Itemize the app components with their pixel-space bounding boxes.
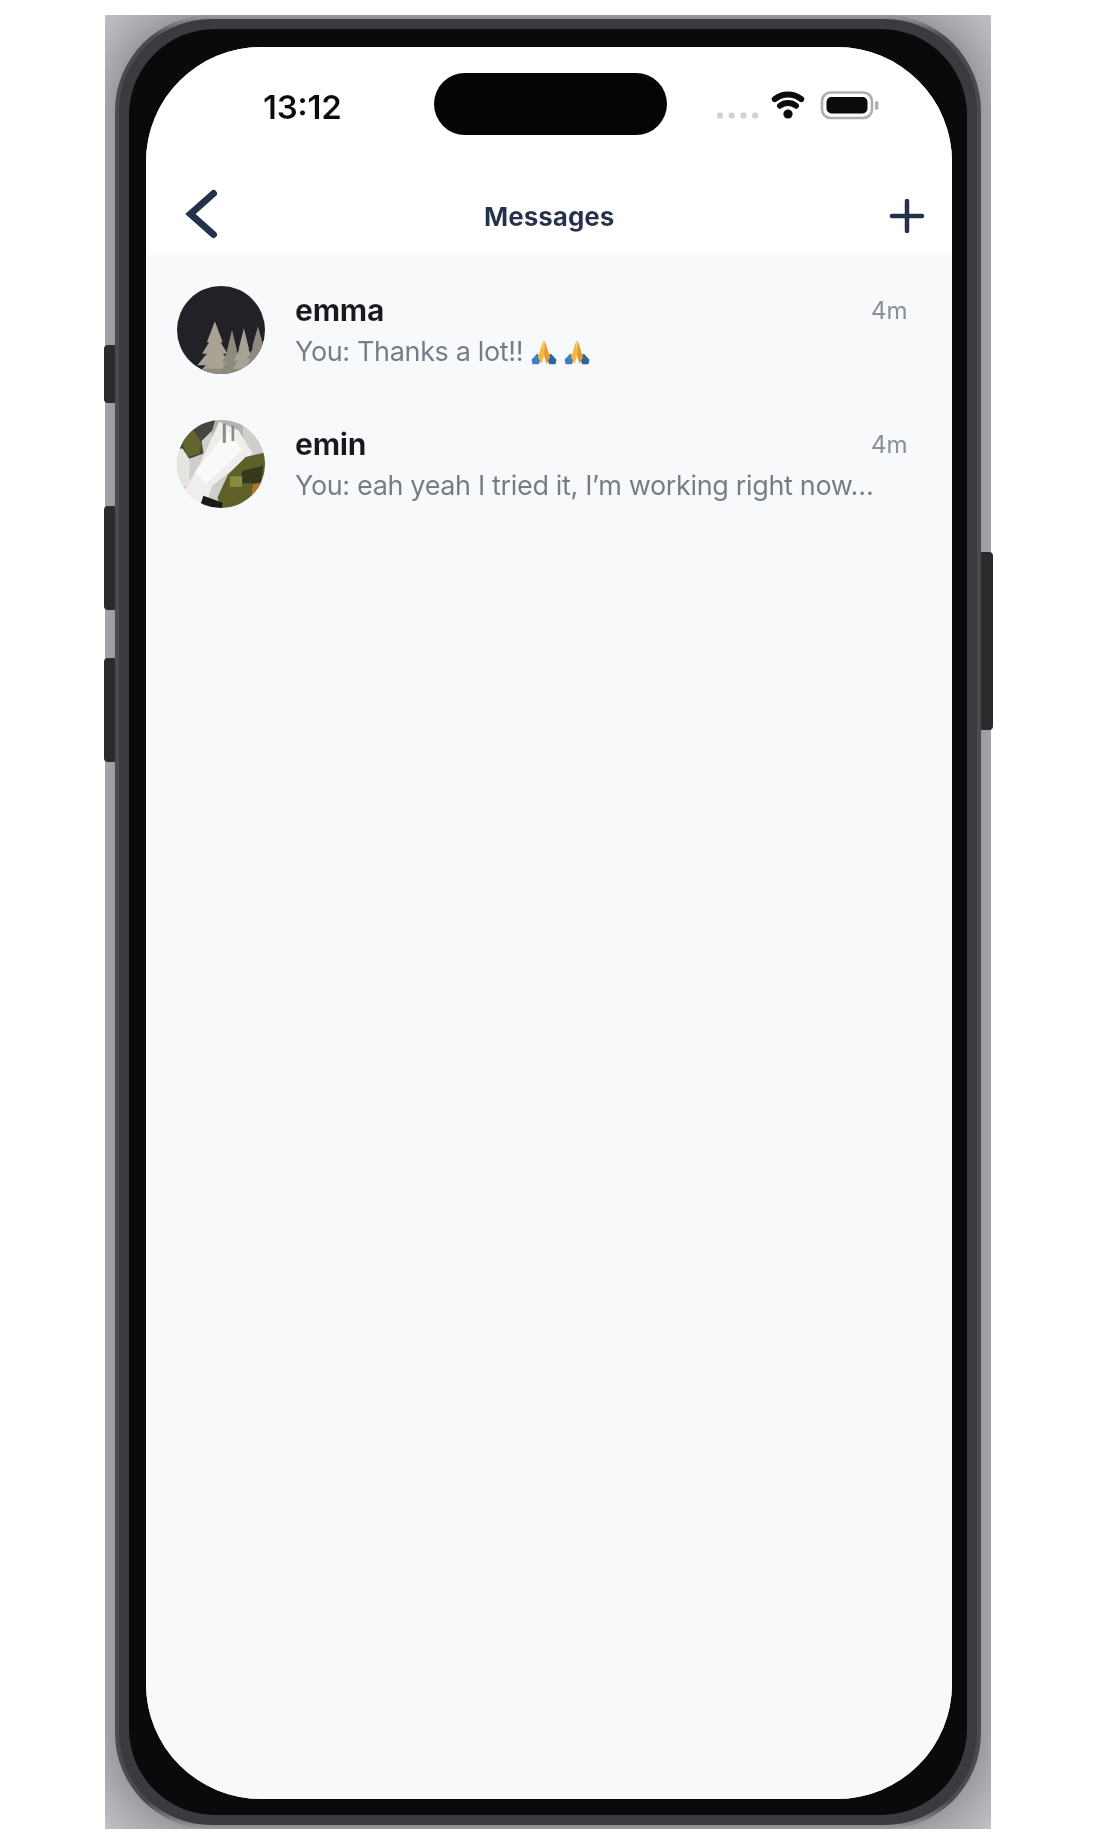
staticText: emma (295, 292, 871, 328)
staticText: You: eah yeah I tried it, I’m working ri… (295, 469, 874, 502)
button[interactable] (174, 186, 230, 242)
button[interactable]: emma (146, 263, 952, 397)
staticText: You: Thanks a lot!! (295, 335, 531, 368)
button[interactable] (878, 190, 936, 242)
staticText: Messages (484, 201, 615, 232)
staticText: emin (295, 426, 871, 462)
button[interactable]: emin (146, 397, 952, 531)
staticText: 13:12 (263, 87, 342, 127)
staticText: 4m (871, 296, 908, 325)
staticText: 4m (871, 430, 908, 459)
